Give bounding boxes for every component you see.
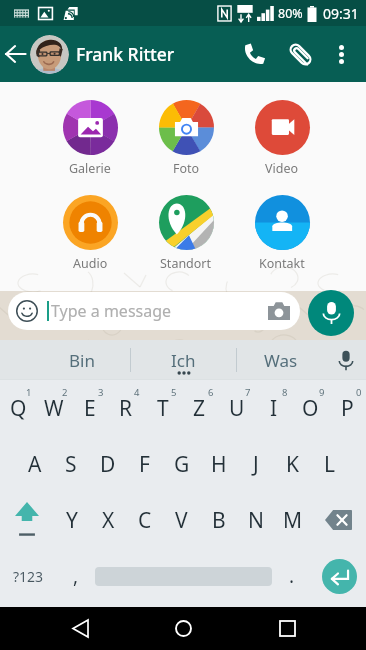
staticText: O <box>302 394 319 423</box>
button[interactable]: Back <box>0 26 30 82</box>
button[interactable]: I <box>255 380 292 436</box>
button[interactable]: , <box>56 548 95 604</box>
staticText: 0 <box>356 386 362 399</box>
staticText: 7 <box>245 386 251 399</box>
button[interactable]: C <box>126 492 163 548</box>
staticText: 5 <box>171 386 177 399</box>
staticText: E <box>84 394 96 423</box>
button[interactable]: Q <box>0 380 36 436</box>
staticText: Audio <box>73 255 108 272</box>
staticText: Z <box>193 394 206 423</box>
staticText: Was <box>264 349 298 372</box>
button[interactable]: . <box>272 548 312 604</box>
button[interactable]: Audio <box>42 195 138 272</box>
staticText: I <box>270 394 278 423</box>
button[interactable]: Enter <box>312 548 366 604</box>
staticText: Type a message <box>51 300 172 322</box>
staticText: D <box>100 450 116 479</box>
button[interactable]: X <box>90 492 126 548</box>
staticText: , <box>73 563 79 589</box>
staticText: Galerie <box>69 160 111 177</box>
staticText: X <box>102 506 115 535</box>
staticText: 4 <box>134 386 140 399</box>
staticText: . <box>289 563 295 589</box>
staticText: Kontakt <box>259 255 305 272</box>
button[interactable]: Back <box>56 607 104 650</box>
button[interactable]: ?123 <box>0 548 56 604</box>
button[interactable]: G <box>163 436 200 492</box>
staticText: 1 <box>26 386 32 399</box>
button[interactable]: Y <box>54 492 90 548</box>
button[interactable]: E <box>72 380 108 436</box>
staticText: Foto <box>173 160 200 177</box>
staticText: G <box>174 450 190 479</box>
button[interactable]: Backspace <box>311 492 366 548</box>
staticText: Q <box>10 394 27 423</box>
staticText: Y <box>66 506 78 535</box>
button[interactable]: Voice message <box>308 290 354 336</box>
button[interactable]: W <box>36 380 72 436</box>
button[interactable]: Space <box>95 548 272 604</box>
staticText: T <box>157 394 169 423</box>
button[interactable]: Standort <box>138 195 234 272</box>
staticText: C <box>138 506 152 535</box>
button[interactable]: L <box>311 436 348 492</box>
button[interactable]: Recents <box>263 607 311 650</box>
staticText: N <box>248 506 264 535</box>
button[interactable]: Kontakt <box>234 195 330 272</box>
staticText: 9 <box>319 386 325 399</box>
staticText: W <box>44 394 64 423</box>
staticText: H <box>211 450 227 479</box>
button[interactable]: S <box>53 436 89 492</box>
staticText: U <box>229 394 245 423</box>
staticText: F <box>139 450 150 479</box>
button[interactable]: T <box>144 380 181 436</box>
button[interactable]: Ich <box>131 340 236 380</box>
staticText: 09:31 <box>323 4 359 23</box>
button[interactable]: A <box>17 436 53 492</box>
staticText: R <box>119 394 133 423</box>
staticText: V <box>175 506 188 535</box>
staticText: Ich <box>171 349 196 372</box>
staticText: S <box>65 450 77 479</box>
button[interactable]: Foto <box>138 100 234 177</box>
staticText: J <box>253 450 259 479</box>
button[interactable]: V <box>163 492 200 548</box>
staticText: Standort <box>160 255 212 272</box>
button[interactable]: Galerie <box>42 100 138 177</box>
button[interactable]: J <box>237 436 274 492</box>
button[interactable]: Z <box>181 380 218 436</box>
button[interactable]: K <box>274 436 311 492</box>
button[interactable]: B <box>200 492 237 548</box>
staticText: 8 <box>282 386 288 399</box>
staticText: A <box>28 450 42 479</box>
button[interactable]: Bin <box>34 340 130 380</box>
button[interactable] <box>30 35 69 74</box>
staticText: 2 <box>62 386 68 399</box>
staticText: K <box>286 450 299 479</box>
button[interactable]: Frank Ritter <box>76 42 175 66</box>
button[interactable]: Was <box>237 340 325 380</box>
button[interactable]: Voice input <box>325 340 366 380</box>
staticText: M <box>283 506 303 535</box>
button[interactable]: O <box>292 380 329 436</box>
button[interactable]: Video <box>234 100 330 177</box>
button[interactable]: R <box>108 380 144 436</box>
button[interactable]: P <box>329 380 366 436</box>
button[interactable]: Call <box>231 26 277 82</box>
staticText: 6 <box>208 386 214 399</box>
button[interactable]: U <box>218 380 255 436</box>
button[interactable]: F <box>126 436 163 492</box>
button[interactable]: Home <box>159 607 207 650</box>
button[interactable]: M <box>274 492 311 548</box>
staticText: L <box>324 450 336 479</box>
button[interactable]: H <box>200 436 237 492</box>
staticText: 80% <box>278 5 303 22</box>
button[interactable]: N <box>237 492 274 548</box>
staticText: B <box>212 506 226 535</box>
button[interactable]: More options <box>323 26 360 82</box>
button[interactable]: Shift <box>0 492 54 548</box>
button[interactable]: Type a message <box>8 292 300 330</box>
button[interactable]: Attach <box>277 26 323 82</box>
button[interactable]: D <box>89 436 126 492</box>
